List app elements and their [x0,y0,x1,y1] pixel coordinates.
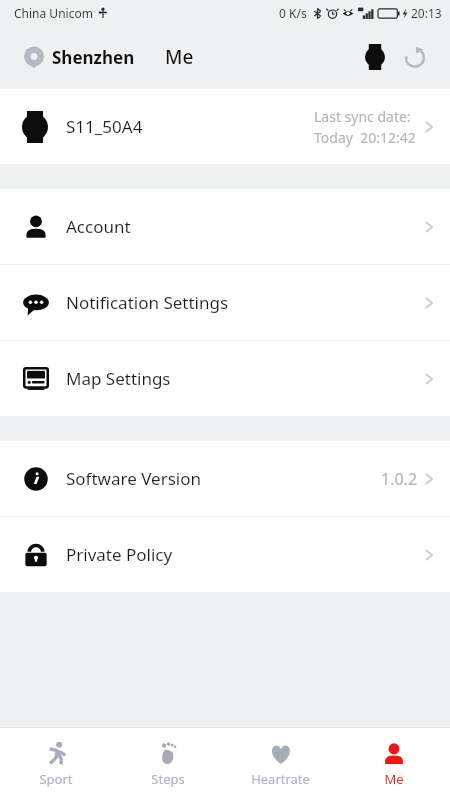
staticText: Me [165,44,194,70]
button[interactable]: Sync [398,40,432,74]
button[interactable]: Heartrate [224,728,337,800]
staticText: China Unicom [14,5,93,21]
button[interactable]: Watch device [358,40,392,74]
staticText: Private Policy [66,543,173,566]
staticText: Last sync date: [314,107,411,126]
staticText: Today 20:12:42 [314,128,416,147]
button[interactable]: Software Version [0,441,450,516]
button[interactable]: Me [337,728,450,800]
button[interactable]: Map Settings [0,341,450,416]
staticText: 1.0.2 [381,468,418,490]
staticText: Shenzhen [52,46,135,69]
button[interactable]: Private Policy [0,517,450,592]
button[interactable]: Notification Settings [0,265,450,340]
staticText: Map Settings [66,367,171,390]
button[interactable]: S11_50A4 [0,89,450,164]
staticText: Me [384,770,404,788]
staticText: Software Version [66,467,201,490]
staticText: 0 K/s [279,5,307,21]
button[interactable]: Account [0,189,450,264]
staticText: Account [66,215,131,238]
staticText: Steps [151,770,185,788]
staticText: 20:13 [411,5,442,21]
staticText: Notification Settings [66,291,229,314]
button[interactable]: Steps [112,728,224,800]
button[interactable]: Sport [0,728,112,800]
staticText: S11_50A4 [66,115,143,138]
staticText: Sport [39,770,73,788]
staticText: Heartrate [251,770,310,788]
button[interactable]: Shenzhen [22,43,137,71]
